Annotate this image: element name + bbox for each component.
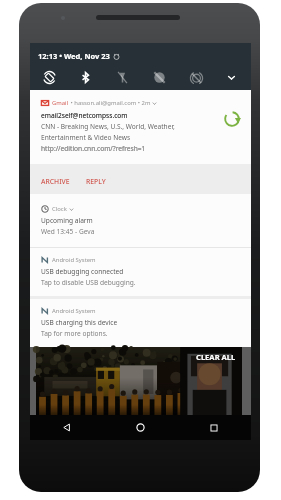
button[interactable]: Flashlight xyxy=(105,65,139,89)
staticText: Tap for more options. xyxy=(41,318,108,338)
button[interactable]: Cast xyxy=(179,65,213,89)
staticText: Tap to disable USB debugging. xyxy=(41,267,136,287)
staticText: email2self@netcompss.com CNN - Breaking … xyxy=(41,111,175,153)
staticText: Clock xyxy=(52,205,69,213)
staticText: CLEAR ALL xyxy=(196,352,236,362)
button[interactable]: Home xyxy=(103,415,177,440)
staticText: USB debugging connected xyxy=(41,267,124,276)
button[interactable]: Back xyxy=(30,415,103,440)
staticText: Upcoming alarm xyxy=(41,216,93,225)
button[interactable]: REPLY xyxy=(81,169,111,190)
staticText: USB charging this device xyxy=(41,318,118,327)
button[interactable]: Expand quick settings xyxy=(217,65,245,89)
button[interactable]: Do not disturb xyxy=(142,65,176,89)
button[interactable]: Sync xyxy=(220,107,244,131)
button[interactable]: Bluetooth xyxy=(68,65,102,89)
staticText: Android System xyxy=(52,307,96,315)
staticText: Android System xyxy=(52,256,96,264)
button[interactable]: ARCHIVE xyxy=(36,169,75,190)
button[interactable] xyxy=(36,347,242,415)
button[interactable]: Recents xyxy=(177,415,251,440)
staticText: http://edition.cnn.com/?refresh=1 xyxy=(41,111,146,153)
button[interactable]: Android System xyxy=(30,248,251,296)
staticText: • hasson.ali@gmail.com • 2m xyxy=(69,99,152,107)
staticText: REPLY xyxy=(86,177,106,186)
staticText: ARCHIVE xyxy=(41,177,70,186)
button[interactable]: Gmail xyxy=(30,90,251,194)
button[interactable]: CLEAR ALL xyxy=(192,350,240,364)
staticText: email2self@netcompss.com xyxy=(41,111,128,120)
staticText: Wed 13:45 - Geva xyxy=(41,216,95,236)
button[interactable]: Android System xyxy=(30,299,251,347)
button[interactable]: Clock xyxy=(30,194,251,247)
staticText: 12:13 • Wed, Nov 23 xyxy=(38,51,110,61)
button[interactable]: Auto rotate xyxy=(32,65,66,89)
staticText: Gmail xyxy=(52,99,69,107)
